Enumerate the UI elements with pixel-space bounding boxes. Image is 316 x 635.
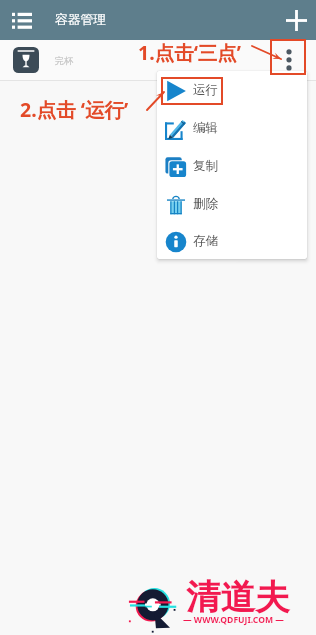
button[interactable]: More options [281,44,297,70]
staticText: 容器管理 [55,12,107,28]
button[interactable]: 存储 [157,223,307,259]
staticText: 存储 [193,233,218,249]
staticText: 编辑 [193,120,218,136]
staticText: 运行 [193,82,218,98]
staticText: 2.点击 ‘运行’ [20,96,129,123]
staticText: 删除 [193,196,218,212]
staticText: 完杯 [55,55,73,66]
button[interactable]: Add [277,0,316,40]
staticText: — WWW.QDFUJI.COM — [183,614,284,626]
button[interactable]: 复制 [157,147,307,185]
staticText: 清道夫 [186,576,290,619]
button[interactable]: 删除 [157,185,307,223]
button[interactable]: 完杯 [0,40,316,80]
button[interactable]: 编辑 [157,109,307,147]
button[interactable]: 运行 [157,71,307,109]
staticText: 1.点击‘三点’ [138,39,242,66]
staticText: 复制 [193,158,218,174]
button[interactable]: Navigation menu [0,0,44,40]
